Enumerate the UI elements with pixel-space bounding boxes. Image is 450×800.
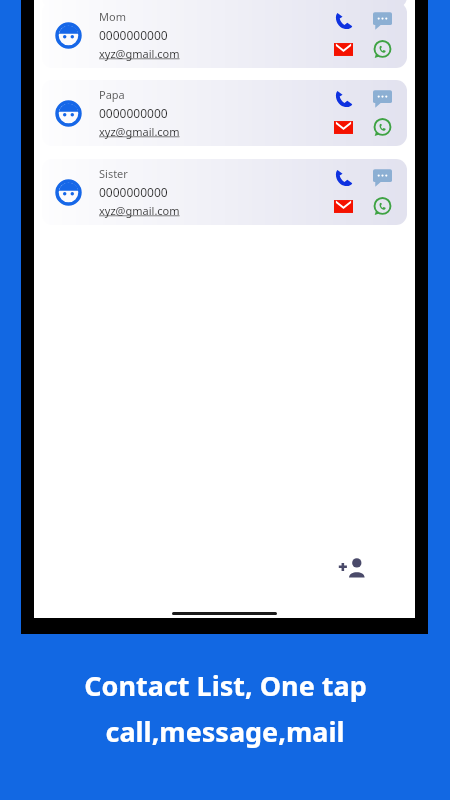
staticText: xyz@gmail.com bbox=[99, 46, 180, 61]
button[interactable]: Message bbox=[372, 167, 393, 188]
staticText: xyz@gmail.com bbox=[99, 124, 180, 139]
staticText: 0000000000 bbox=[99, 105, 168, 121]
button[interactable]: Call bbox=[333, 88, 354, 109]
staticText: xyz@gmail.com bbox=[99, 203, 180, 218]
staticText: 0000000000 bbox=[99, 27, 168, 43]
staticText: Sister bbox=[99, 166, 128, 181]
staticText: Contact List, One tap bbox=[84, 667, 367, 704]
button[interactable]: Message bbox=[372, 10, 393, 31]
button[interactable]: Email bbox=[333, 196, 354, 217]
button[interactable]: Email bbox=[333, 117, 354, 138]
staticText: 0000000000 bbox=[99, 184, 168, 200]
button[interactable]: Mom bbox=[42, 2, 407, 68]
button[interactable]: Email bbox=[333, 39, 354, 60]
button[interactable]: Sister bbox=[42, 159, 407, 225]
button[interactable]: Add contact bbox=[323, 539, 381, 597]
button[interactable]: WhatsApp bbox=[372, 39, 393, 60]
button[interactable] bbox=[42, 0, 407, 8]
button[interactable]: Papa bbox=[42, 80, 407, 146]
button[interactable]: WhatsApp bbox=[372, 196, 393, 217]
staticText: call,message,mail bbox=[105, 713, 345, 750]
button[interactable]: Call bbox=[333, 167, 354, 188]
button[interactable]: Message bbox=[372, 88, 393, 109]
button[interactable]: Call bbox=[333, 10, 354, 31]
staticText: Papa bbox=[99, 87, 125, 102]
button[interactable]: WhatsApp bbox=[372, 117, 393, 138]
staticText: Mom bbox=[99, 9, 126, 24]
